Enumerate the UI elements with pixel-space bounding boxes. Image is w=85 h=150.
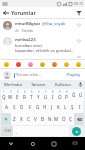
button[interactable]: Ç bbox=[67, 113, 74, 125]
staticText: Paylaş bbox=[67, 72, 81, 78]
button[interactable]: Backspace bbox=[74, 113, 84, 125]
button[interactable]: Like bbox=[75, 37, 82, 44]
staticText: 0 bbox=[66, 90, 68, 94]
staticText: N bbox=[48, 116, 52, 122]
staticText: I bbox=[52, 94, 54, 100]
staticText: Ş bbox=[71, 104, 74, 110]
staticText: D bbox=[20, 104, 24, 110]
button[interactable]: 7 bbox=[42, 89, 49, 101]
button[interactable]: H bbox=[41, 101, 48, 113]
button[interactable]: mehmet0210 bbox=[0, 55, 85, 59]
staticText: K bbox=[57, 104, 60, 110]
staticText: H bbox=[43, 104, 47, 110]
button[interactable]: 4 bbox=[21, 89, 28, 101]
staticText: A bbox=[5, 104, 8, 110]
button[interactable]: 5 bbox=[28, 89, 35, 101]
staticText: M bbox=[54, 116, 59, 122]
button[interactable]: Share bbox=[73, 7, 85, 18]
staticText: 6 bbox=[38, 90, 40, 94]
button[interactable]: Kullanıcı bbox=[51, 80, 76, 89]
button[interactable]: Shift bbox=[1, 113, 11, 125]
button[interactable]: melisa223 bbox=[0, 35, 85, 55]
button[interactable]: Back bbox=[0, 7, 11, 18]
staticText: Kullanıcı bbox=[55, 82, 72, 88]
button[interactable]: Yorum ekle... bbox=[14, 71, 66, 79]
button[interactable]: Merhaba bbox=[0, 80, 26, 89]
button[interactable]: B bbox=[39, 113, 46, 125]
button[interactable]: Ş bbox=[69, 101, 76, 113]
staticText: B bbox=[41, 116, 44, 122]
button[interactable]: Emoji 6 bbox=[63, 61, 70, 68]
staticText: , bbox=[16, 129, 18, 134]
button[interactable]: Period bbox=[61, 126, 69, 136]
button[interactable]: K bbox=[55, 101, 62, 113]
staticText: Tamam bbox=[31, 82, 46, 88]
staticText: I bbox=[79, 104, 81, 110]
button[interactable]: N bbox=[46, 113, 53, 125]
staticText: Ç bbox=[69, 116, 72, 122]
button[interactable]: Ü bbox=[77, 89, 84, 101]
button[interactable]: J bbox=[48, 101, 55, 113]
staticText: Y bbox=[37, 94, 40, 100]
button[interactable]: Tamam bbox=[26, 80, 51, 89]
button[interactable]: Paylaş bbox=[66, 72, 82, 78]
staticText: L bbox=[64, 104, 67, 110]
button[interactable]: 3 bbox=[14, 89, 21, 101]
button[interactable]: Comma bbox=[13, 126, 21, 136]
button[interactable]: Recent apps bbox=[43, 137, 64, 150]
button[interactable]: 0 bbox=[63, 89, 70, 101]
button[interactable]: Symbols bbox=[1, 126, 13, 136]
button[interactable]: Like bbox=[75, 21, 82, 28]
staticText: C bbox=[27, 116, 30, 122]
button[interactable]: I bbox=[76, 101, 83, 113]
button[interactable]: 8 bbox=[49, 89, 56, 101]
staticText: Ü bbox=[79, 92, 83, 98]
staticText: 9 bbox=[59, 90, 61, 94]
button[interactable]: emurBilgisiz bbox=[0, 19, 85, 35]
button[interactable]: Emoji 4 bbox=[39, 61, 46, 68]
button[interactable]: 2 bbox=[7, 89, 14, 101]
button[interactable]: X bbox=[18, 113, 25, 125]
button[interactable]: Z bbox=[11, 113, 18, 125]
staticText: 4 bbox=[24, 90, 26, 94]
button[interactable]: L bbox=[62, 101, 69, 113]
button[interactable]: Emoji 5 bbox=[51, 61, 58, 68]
button[interactable]: S bbox=[10, 101, 18, 113]
button[interactable]: 6 bbox=[35, 89, 42, 101]
button[interactable]: G bbox=[34, 101, 41, 113]
button[interactable]: V bbox=[32, 113, 39, 125]
staticText: 2 bbox=[10, 90, 12, 94]
staticText: 1 bbox=[3, 90, 5, 94]
button[interactable]: Emoji 3 bbox=[27, 61, 34, 68]
button[interactable]: A bbox=[2, 101, 10, 113]
staticText: bunaltaci anot kapandan, etkinlik ve gün… bbox=[15, 43, 75, 53]
staticText: Yorumlar bbox=[11, 9, 36, 16]
button[interactable]: C bbox=[25, 113, 32, 125]
staticText: J bbox=[51, 104, 53, 110]
button[interactable]: D bbox=[18, 101, 26, 113]
button[interactable]: Ğ bbox=[70, 89, 77, 101]
button[interactable]: F bbox=[26, 101, 34, 113]
staticText: @lisa_soyak bbox=[42, 21, 66, 27]
staticText: F bbox=[29, 104, 32, 110]
staticText: G bbox=[36, 104, 40, 110]
staticText: R bbox=[23, 94, 26, 100]
button[interactable]: 1 bbox=[1, 89, 7, 101]
button[interactable]: M bbox=[53, 113, 60, 125]
staticText: 8 bbox=[52, 90, 54, 94]
button[interactable]: Back bbox=[0, 137, 22, 150]
staticText: 2s Yanıtla bbox=[15, 28, 33, 33]
button[interactable]: Ö bbox=[60, 113, 67, 125]
button[interactable]: Emoji 7 bbox=[75, 61, 82, 68]
staticText: . bbox=[64, 129, 66, 134]
button[interactable]: Hide keyboard bbox=[64, 137, 85, 150]
button[interactable]: 9 bbox=[56, 89, 63, 101]
button[interactable]: Voice input bbox=[76, 80, 85, 89]
button[interactable]: Emoji 1 bbox=[3, 61, 10, 68]
button[interactable]: Home bbox=[22, 137, 43, 150]
staticText: melisa223 bbox=[15, 37, 36, 43]
button[interactable]: Emoji 2 bbox=[15, 61, 22, 68]
staticText: O bbox=[58, 94, 62, 100]
button[interactable]: Send bbox=[72, 127, 81, 136]
